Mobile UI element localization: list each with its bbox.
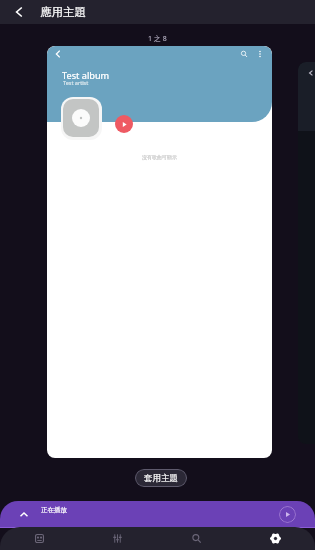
button[interactable]: More options	[253, 47, 267, 61]
button[interactable]: 正在播放	[0, 501, 315, 528]
staticText: 1 之 8	[148, 34, 167, 44]
button[interactable]: Equalizer	[78, 527, 157, 550]
staticText: 沒有歌曲可顯示	[142, 154, 177, 160]
button[interactable]: Search	[157, 527, 236, 550]
button[interactable]: Back	[9, 2, 29, 22]
button[interactable]: Play	[115, 115, 133, 133]
staticText: 應用主題	[40, 5, 86, 19]
staticText: 正在播放	[41, 506, 67, 514]
button[interactable]: Library	[0, 527, 78, 550]
button[interactable]: Search	[237, 47, 251, 61]
staticText: 套用主題	[144, 473, 178, 484]
button[interactable]: Play	[279, 506, 296, 523]
staticText: Test album	[62, 69, 110, 82]
button[interactable]: 套用主題	[135, 469, 187, 487]
button[interactable]: Back	[51, 47, 65, 61]
button[interactable]: Settings	[236, 527, 315, 550]
staticText: Test artist	[63, 79, 89, 86]
